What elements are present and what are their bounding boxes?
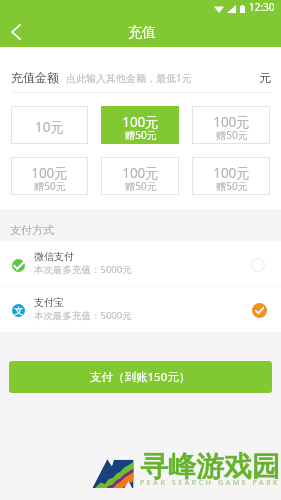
staticText: 10元 [35, 118, 64, 136]
button[interactable]: 100元 [192, 106, 270, 144]
button[interactable]: 100元 [101, 106, 179, 144]
button[interactable]: 支付（到账150元） [9, 361, 272, 393]
button[interactable]: 100元 [192, 157, 270, 195]
button[interactable]: Back [0, 18, 31, 46]
staticText: 充值 [128, 24, 156, 42]
button[interactable]: 10元 [11, 106, 88, 144]
staticText: 支付宝 [34, 296, 64, 309]
staticText: 点此输入其他金额，最低1元 [66, 71, 259, 85]
staticText: 100元 [213, 164, 250, 182]
staticText: 本次最多充值：5000元 [34, 309, 132, 322]
staticText: 充值金额 [11, 70, 59, 85]
staticText: 本次最多充值：5000元 [34, 263, 132, 276]
button[interactable]: 100元 [101, 157, 179, 195]
staticText: 赠50元 [125, 179, 157, 193]
staticText: 赠50元 [216, 128, 248, 142]
staticText: 100元 [31, 164, 68, 182]
staticText: 赠50元 [125, 128, 157, 142]
staticText: 100元 [213, 113, 250, 131]
staticText: 12:30 [249, 0, 275, 14]
button[interactable]: 支 [0, 287, 281, 332]
staticText: 支付（到账150元） [90, 369, 191, 385]
staticText: 寻峰游戏园 [140, 449, 280, 484]
staticText: 100元 [122, 113, 159, 131]
button[interactable]: 微信支付 [0, 241, 281, 286]
staticText: 支 [14, 305, 24, 317]
staticText: PEAK SEARCH GAME PARK [140, 478, 281, 488]
staticText: 微信支付 [34, 250, 74, 263]
staticText: 支付方式 [10, 223, 54, 237]
staticText: 100元 [122, 164, 159, 182]
staticText: 赠50元 [216, 179, 248, 193]
staticText: 赠50元 [34, 179, 66, 193]
button[interactable]: 100元 [11, 157, 88, 195]
staticText: 元 [259, 70, 271, 85]
